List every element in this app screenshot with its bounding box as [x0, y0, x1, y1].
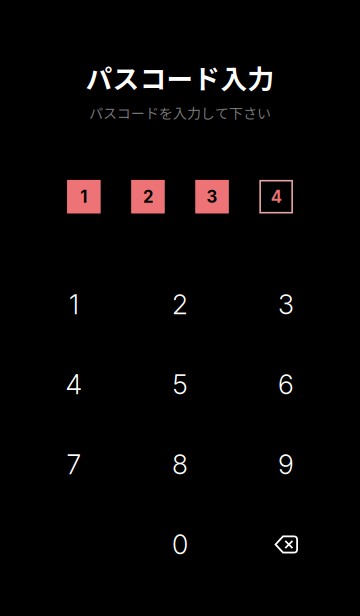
staticText: 5: [172, 368, 187, 401]
staticText: 1: [69, 288, 79, 321]
staticText: 2: [172, 288, 188, 321]
button[interactable]: Delete: [233, 504, 339, 584]
staticText: 6: [278, 368, 294, 401]
button[interactable]: 4: [21, 344, 127, 424]
staticText: パスコード入力: [85, 58, 274, 97]
staticText: パスコードを入力して下さい: [89, 103, 271, 123]
button[interactable]: 6: [233, 344, 339, 424]
staticText: 4: [271, 187, 282, 207]
button[interactable]: 8: [127, 424, 233, 504]
button[interactable]: 0: [127, 504, 233, 584]
button[interactable]: 2: [127, 264, 233, 344]
staticText: 7: [66, 448, 81, 481]
staticText: 0: [172, 528, 188, 561]
button[interactable]: 3: [233, 264, 339, 344]
staticText: 1: [80, 187, 87, 207]
staticText: 3: [278, 288, 294, 321]
staticText: 4: [65, 368, 82, 401]
staticText: 9: [278, 448, 294, 481]
staticText: 8: [172, 448, 188, 481]
staticText: 3: [207, 187, 218, 207]
button[interactable]: 5: [127, 344, 233, 424]
button[interactable]: 1: [21, 264, 127, 344]
button[interactable]: 9: [233, 424, 339, 504]
button[interactable]: 7: [21, 424, 127, 504]
staticText: 2: [143, 187, 153, 207]
